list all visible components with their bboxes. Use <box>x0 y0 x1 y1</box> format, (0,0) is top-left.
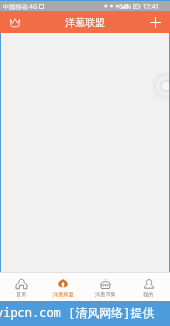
button[interactable]: 洋葱市集 <box>84 273 127 301</box>
staticText: 洋葱联盟 <box>53 291 74 298</box>
staticText: 洋葱市集 <box>95 291 116 298</box>
button[interactable]: 首页 <box>0 273 42 301</box>
button[interactable]: 洋葱联盟 <box>42 273 84 301</box>
staticText: 洋葱联盟 <box>65 16 105 29</box>
staticText: 中国移动 4G <box>3 2 38 10</box>
staticText: vipcn.com [清风网络]提供 <box>0 304 155 320</box>
button[interactable]: 我的 <box>127 273 170 301</box>
button[interactable]: Membership <box>7 15 23 31</box>
staticText: 17:41 <box>143 2 159 10</box>
staticText: 我的 <box>143 291 154 298</box>
staticText: 首页 <box>16 291 27 298</box>
button[interactable]: Add <box>147 14 163 30</box>
staticText: 64% <box>119 2 132 10</box>
